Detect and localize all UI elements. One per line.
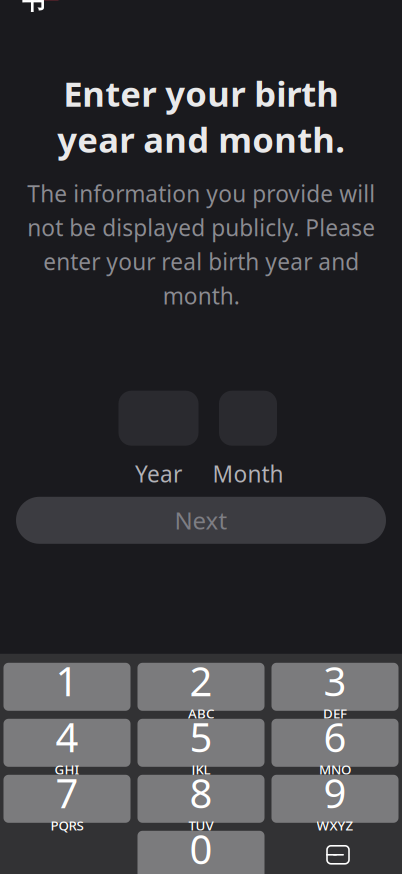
staticText: JKL [191,760,210,778]
staticText: 3 [323,654,346,707]
button[interactable]: 4 [3,719,130,767]
button[interactable]: 1 [3,663,130,711]
button[interactable]: 2 [137,663,264,711]
button[interactable]: Month [212,391,283,489]
staticText: The information you provide will not be … [27,178,375,311]
staticText: GHI [54,760,79,778]
staticText: 4 [55,710,78,763]
staticText: WXYZ [316,816,353,834]
staticText: PQRS [50,816,83,834]
button[interactable]: 0 [137,831,264,874]
staticText: 0 [189,822,212,874]
staticText: 小红书 [22,0,68,16]
button[interactable]: Year [118,391,198,489]
staticText: 2 [189,654,212,707]
staticText: 7 [55,766,78,819]
button[interactable]: Delete [271,831,398,874]
button[interactable]: 3 [271,663,398,711]
button[interactable]: 5 [137,719,264,767]
staticText: Next [174,504,227,536]
staticText: DEF [323,704,347,722]
button[interactable]: 6 [271,719,398,767]
staticText: Year [135,459,182,489]
staticText: Month [212,459,283,489]
button[interactable]: 8 [137,775,264,823]
staticText: Enter your birth year and month. [57,70,345,162]
staticText: 9 [323,766,346,819]
staticText: MNO [319,760,351,778]
button[interactable]: 9 [271,775,398,823]
staticText: 1 [55,654,78,707]
staticText: 5 [189,710,212,763]
staticText: ABC [188,704,214,722]
staticText: 6 [323,710,346,763]
button[interactable]: Next [16,497,386,544]
staticText: 8 [189,766,212,819]
button[interactable]: 7 [3,775,130,823]
staticText: TUV [188,816,213,834]
